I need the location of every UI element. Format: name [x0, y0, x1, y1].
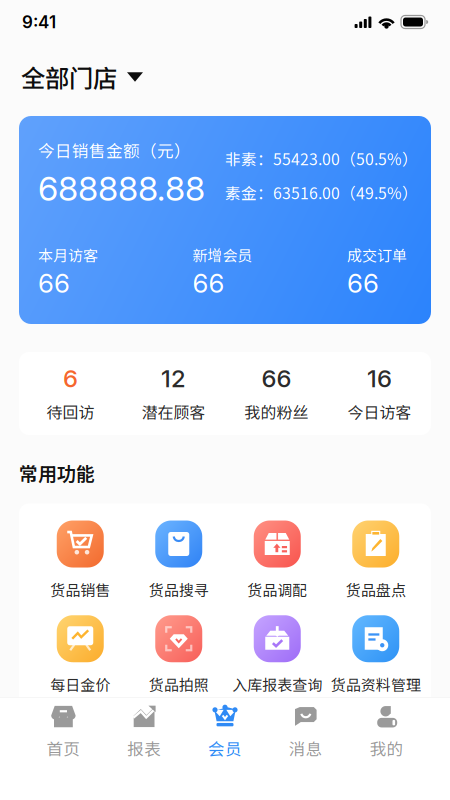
button[interactable]: 16: [328, 352, 431, 435]
staticText: 货品销售: [50, 578, 110, 600]
staticText: 入库报表查询: [232, 673, 322, 695]
staticText: 货品拍照: [149, 673, 209, 695]
staticText: 66: [38, 267, 70, 299]
staticText: 消息: [289, 736, 323, 760]
staticText: 报表: [127, 736, 161, 760]
button[interactable]: 入库报表查询: [228, 615, 326, 695]
staticText: 66: [192, 267, 224, 299]
staticText: 我的: [370, 736, 404, 760]
staticText: 新增会员: [192, 244, 252, 265]
staticText: 12: [161, 364, 186, 393]
button[interactable]: 首页: [23, 703, 104, 760]
staticText: 66: [347, 267, 379, 299]
staticText: 素金：63516.00（49.5%）: [225, 181, 418, 204]
staticText: 全部门店: [21, 59, 117, 95]
staticText: 今日销售金额（元）: [38, 138, 191, 162]
button[interactable]: 6: [19, 352, 122, 435]
staticText: 9:41: [22, 12, 56, 32]
staticText: 本月访客: [38, 244, 98, 265]
staticText: 常用功能: [19, 459, 95, 486]
button[interactable]: 报表: [104, 703, 185, 760]
staticText: 成交订单: [347, 244, 407, 265]
staticText: 货品盘点: [346, 578, 406, 600]
button[interactable]: 货品资料管理: [326, 615, 425, 695]
staticText: 货品搜寻: [149, 578, 209, 600]
button[interactable]: 每日金价: [31, 615, 129, 695]
staticText: 潜在顾客: [141, 400, 205, 423]
button[interactable]: 全部门店: [0, 47, 162, 107]
staticText: 会员: [208, 736, 242, 760]
button[interactable]: 66: [225, 352, 328, 435]
staticText: 首页: [46, 736, 80, 760]
button[interactable]: 会员: [185, 703, 265, 760]
staticText: 每日金价: [50, 673, 110, 695]
staticText: 货品调配: [247, 578, 307, 600]
staticText: 66: [261, 364, 291, 393]
staticText: 16: [367, 364, 392, 393]
button[interactable]: 货品拍照: [129, 615, 228, 695]
button[interactable]: 货品销售: [31, 520, 129, 600]
button[interactable]: 消息: [265, 703, 346, 760]
staticText: 非素：55423.00（50.5%）: [225, 147, 418, 170]
staticText: 688888.88: [38, 168, 205, 209]
staticText: 6: [63, 364, 78, 393]
staticText: 今日访客: [347, 400, 411, 423]
button[interactable]: 货品搜寻: [129, 520, 228, 600]
button[interactable]: 货品调配: [228, 520, 326, 600]
button[interactable]: 货品盘点: [326, 520, 425, 600]
staticText: 货品资料管理: [331, 673, 421, 695]
staticText: 待回访: [46, 400, 94, 423]
button[interactable]: 我的: [346, 703, 427, 760]
staticText: 我的粉丝: [244, 400, 308, 423]
button[interactable]: 12: [122, 352, 225, 435]
